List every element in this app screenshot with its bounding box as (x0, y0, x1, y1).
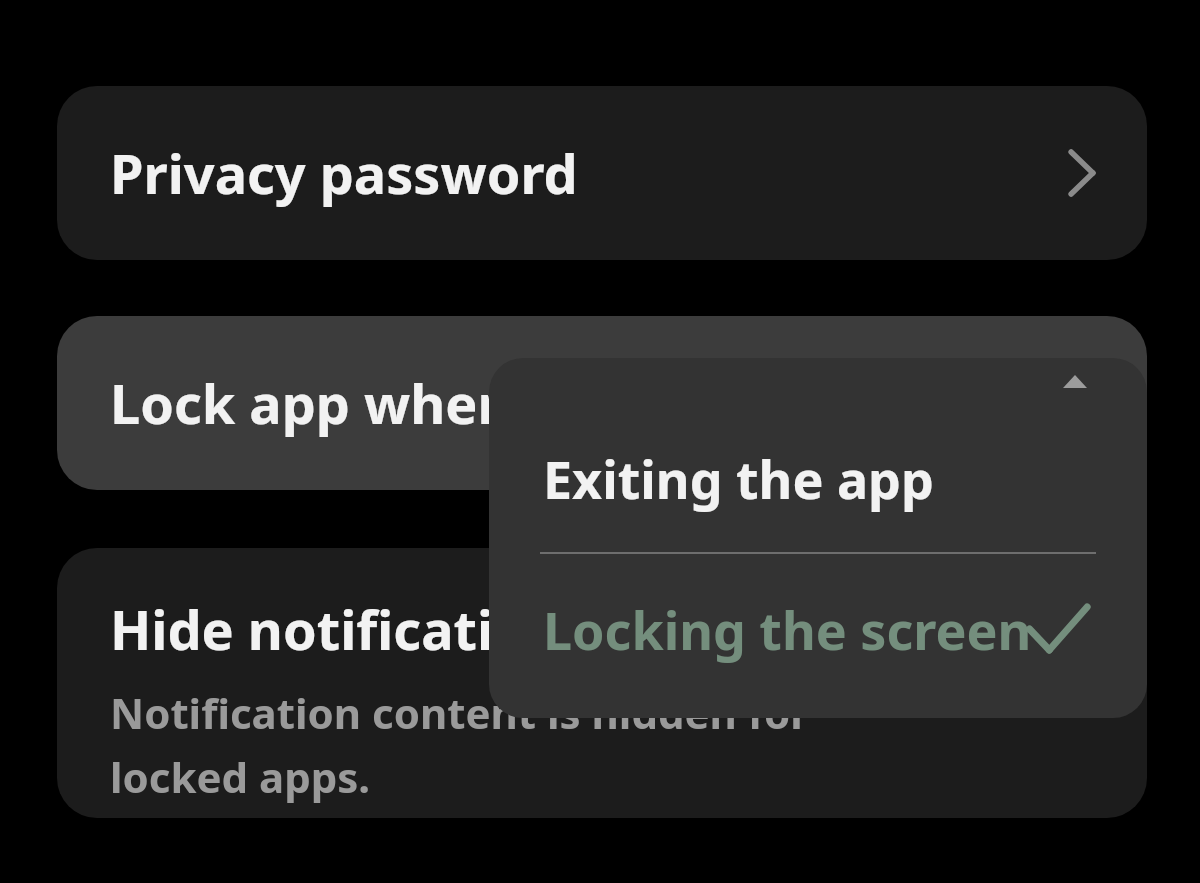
other: Selected (1027, 604, 1089, 654)
staticText: Notification content is hidden for locke… (110, 684, 810, 806)
button[interactable]: Locking the screen (489, 554, 1147, 704)
staticText: Locking the screen (543, 594, 1032, 665)
button[interactable]: Hide notification (57, 548, 1147, 818)
staticText: Exiting the app (543, 443, 934, 514)
button[interactable]: Exiting the app (489, 404, 1147, 552)
staticText: Hide notification (110, 592, 562, 666)
button[interactable]: Lock app when (57, 316, 1147, 490)
button[interactable]: Privacy password (57, 86, 1147, 260)
staticText: Lock app when (110, 366, 513, 440)
staticText: Privacy password (110, 136, 578, 210)
